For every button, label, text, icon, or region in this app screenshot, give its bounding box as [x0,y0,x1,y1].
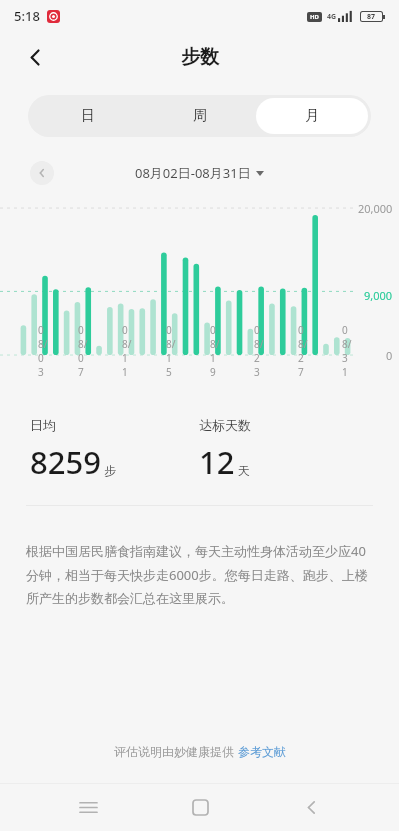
staticText: 步数 [181,45,219,69]
staticText: 周 [193,107,207,125]
button[interactable]: 月 [256,98,368,134]
button[interactable]: Recent apps [64,783,112,831]
staticText: HD [310,13,319,21]
staticText: 日均 [30,417,56,433]
staticText: 天 [238,463,250,478]
staticText: 达标天数 [199,417,251,433]
staticText: 08/07 [78,323,89,379]
button[interactable]: Home [176,783,224,831]
staticText: 08/23 [254,323,265,379]
button[interactable]: 日 [31,98,144,134]
staticText: 8259 [30,441,101,483]
button[interactable]: Back [14,36,56,78]
staticText: 日 [81,107,95,125]
button[interactable]: Previous period [30,161,54,185]
button[interactable]: Back [287,783,335,831]
button[interactable]: 周 [144,98,256,134]
button[interactable]: 08月02日-08月31日 [135,164,264,182]
staticText: 20,000 [358,201,393,216]
staticText: 08/19 [210,323,221,379]
staticText: 08月02日-08月31日 [135,164,251,182]
button[interactable]: 参考文献 [238,744,286,759]
staticText: 87 [367,12,376,21]
staticText: 08/31 [342,323,353,379]
staticText: 步 [104,463,116,478]
staticText: 9,000 [364,288,393,303]
staticText: 0 [386,348,393,363]
staticText: 08/15 [166,323,177,379]
staticText: 08/11 [122,323,133,379]
staticText: 5:18 [14,7,40,25]
staticText: 根据中国居民膳食指南建议，每天主动性身体活动至少应40分钟，相当于每天快步走60… [26,542,373,607]
staticText: 月 [305,107,319,125]
staticText: 08/27 [298,323,309,379]
staticText: 评估说明由妙健康提供 [114,743,238,759]
staticText: 08/03 [38,323,48,379]
staticText: 4G [327,12,337,22]
staticText: 12 [199,441,235,483]
